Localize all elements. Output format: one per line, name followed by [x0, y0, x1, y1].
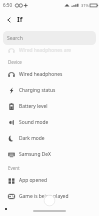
button[interactable]: Game is being played [0, 188, 99, 204]
button[interactable]: Samsung DeX [0, 146, 99, 162]
button[interactable]: Sound mode [0, 114, 99, 130]
staticText: Device [8, 59, 22, 65]
staticText: 31% [81, 3, 89, 8]
staticText: Search [7, 35, 23, 42]
staticText: App opened [19, 177, 47, 184]
staticText: Sound mode [19, 119, 49, 126]
button[interactable]: Dark mode [0, 130, 99, 146]
staticText: Wired headphones [19, 71, 63, 78]
button[interactable]: Wired headphones [0, 66, 99, 82]
staticText: If [17, 15, 23, 25]
staticText: Dark mode [19, 135, 45, 142]
button[interactable]: Charging status [0, 82, 99, 98]
staticText: Charging status [19, 87, 56, 94]
staticText: Event [8, 165, 20, 171]
staticText: Samsung DeX [19, 151, 51, 158]
staticText: Battery level [19, 103, 48, 110]
staticText: Wired headphones are [19, 47, 72, 54]
button[interactable]: Navigate up [0, 11, 17, 28]
staticText: Game is being played [19, 193, 69, 200]
button[interactable]: App opened [0, 172, 99, 188]
staticText: 6:50 [3, 2, 13, 8]
button[interactable]: Search [3, 31, 96, 45]
button[interactable]: Battery level [0, 98, 99, 114]
